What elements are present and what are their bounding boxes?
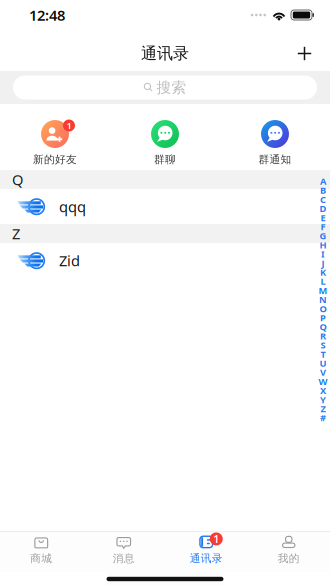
button[interactable]: V [317,368,329,377]
staticText: D [319,202,326,215]
staticText: Zid [59,251,80,270]
button[interactable]: P [317,313,329,322]
button[interactable]: Y [317,395,329,404]
button[interactable]: I [317,249,329,258]
staticText: qqq [59,197,86,216]
button[interactable]: B [317,186,329,195]
button[interactable]: X [317,386,329,395]
button[interactable]: 1 [165,531,247,573]
button[interactable]: C [317,195,329,204]
staticText: J [321,257,324,269]
staticText: A [320,175,326,187]
button[interactable]: G [317,231,329,240]
button[interactable]: J [317,258,329,268]
staticText: X [320,384,326,397]
staticText: 群聊 [154,153,176,166]
staticText: S [320,339,325,351]
button[interactable]: 消息 [82,531,165,573]
staticText: T [320,348,325,360]
button[interactable]: N [317,295,329,304]
staticText: L [320,275,325,287]
button[interactable]: E [317,213,329,222]
button[interactable]: 群通知 [220,120,330,166]
staticText: F [320,220,325,233]
button[interactable]: M [317,286,329,295]
button[interactable]: 我的 [247,531,330,573]
staticText: I [321,248,325,260]
button[interactable]: qqq [0,189,330,224]
button[interactable]: 群聊 [110,120,220,166]
staticText: 1 [213,532,219,546]
staticText: Q [12,170,23,189]
button[interactable]: T [317,349,329,359]
button[interactable]: Add contact [288,34,321,67]
button[interactable]: Zid [0,243,330,278]
staticText: Y [320,393,326,406]
staticText: W [318,375,327,388]
button[interactable]: 商城 [0,531,82,573]
button[interactable]: S [317,340,329,349]
staticText: Z [12,224,20,243]
staticText: U [319,357,326,369]
staticText: N [319,293,327,306]
button[interactable]: L [317,277,329,286]
button[interactable]: D [317,204,329,213]
staticText: K [320,266,326,278]
staticText: 新的好友 [33,153,77,166]
staticText: 12:48 [29,5,65,25]
button[interactable]: Z [317,404,329,413]
staticText: E [320,211,325,224]
button[interactable]: Q [317,322,329,331]
button[interactable]: # [317,413,329,422]
staticText: 群通知 [258,153,291,166]
staticText: B [320,184,326,196]
staticText: 商城 [30,552,52,565]
staticText: 我的 [278,552,300,565]
staticText: P [320,311,326,324]
button[interactable]: 1 [0,120,110,166]
button[interactable]: U [317,359,329,368]
staticText: O [319,302,326,315]
staticText: 通讯录 [190,552,223,565]
staticText: R [320,330,326,342]
button[interactable]: K [317,268,329,277]
staticText: M [318,284,327,297]
staticText: V [320,366,326,378]
button[interactable]: A [317,177,329,186]
button[interactable]: R [317,331,329,340]
staticText: 1 [66,119,71,132]
button[interactable]: 搜索 [0,71,330,104]
staticText: Q [319,321,326,333]
button[interactable]: H [317,240,329,249]
staticText: 消息 [113,552,135,565]
button[interactable]: F [317,222,329,231]
button[interactable]: W [317,377,329,386]
staticText: H [319,239,326,251]
staticText: 通讯录 [141,44,189,63]
staticText: 搜索 [156,78,186,96]
button[interactable]: O [317,304,329,313]
staticText: C [320,193,326,206]
staticText: Z [320,402,325,415]
staticText: # [320,412,326,424]
staticText: G [319,230,326,242]
